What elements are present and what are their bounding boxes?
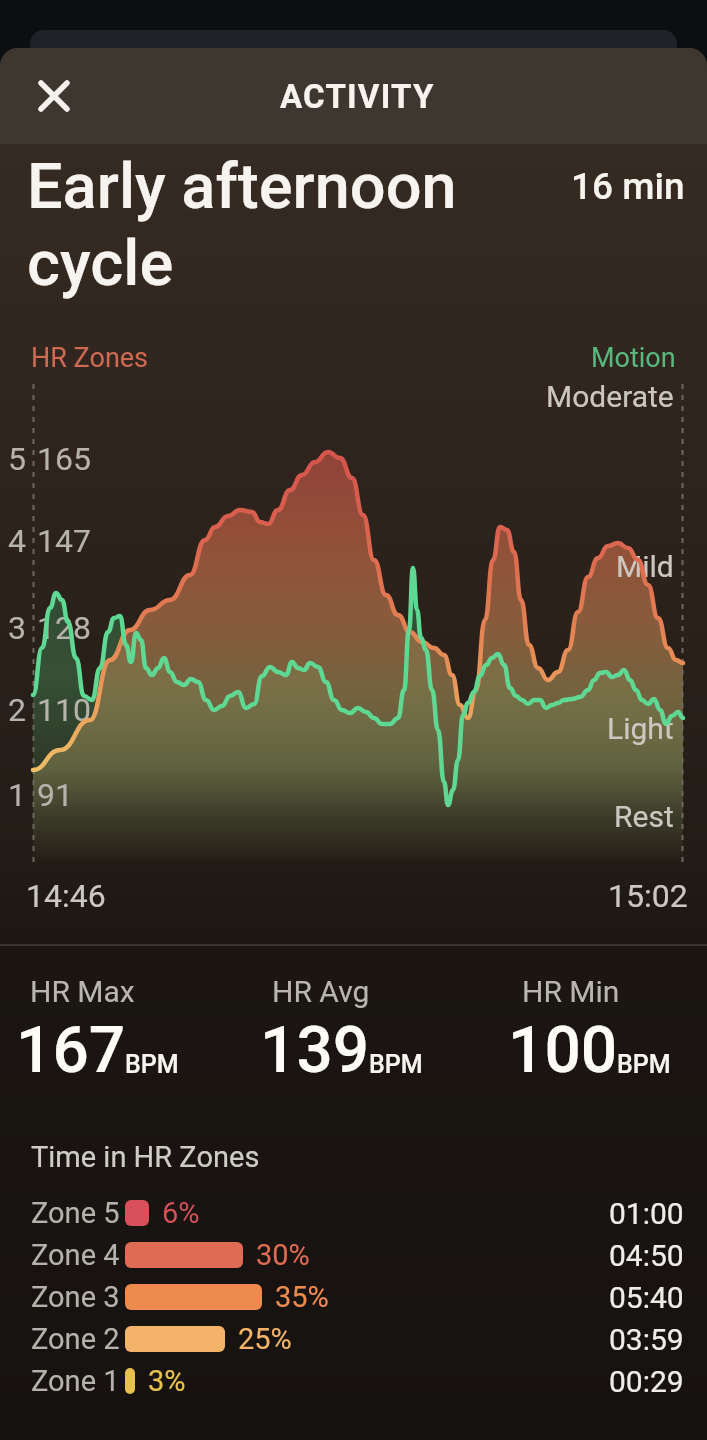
button[interactable]: Zone 3: [0, 1276, 707, 1318]
staticText: 30%: [256, 1238, 310, 1272]
staticText: BPM: [617, 1050, 671, 1079]
staticText: 6%: [162, 1196, 200, 1230]
staticText: HR Zones: [31, 342, 149, 374]
staticText: Zone 3: [31, 1280, 120, 1314]
staticText: Zone 2: [31, 1322, 120, 1356]
staticText: 01:00: [609, 1196, 684, 1231]
staticText: HR Avg: [272, 974, 370, 1009]
staticText: HR Min: [522, 974, 620, 1009]
staticText: 128: [37, 609, 91, 647]
button[interactable]: [34, 76, 74, 116]
staticText: 100: [508, 1013, 618, 1088]
staticText: 147: [37, 522, 91, 560]
staticText: 139: [260, 1013, 370, 1088]
staticText: 2: [8, 691, 26, 729]
staticText: BPM: [369, 1050, 423, 1079]
staticText: Zone 4: [31, 1238, 120, 1272]
button[interactable]: Zone 1: [0, 1360, 707, 1402]
staticText: 00:29: [609, 1364, 684, 1399]
staticText: Moderate: [546, 379, 674, 414]
staticText: 1: [8, 776, 26, 814]
staticText: 91: [37, 776, 73, 814]
staticText: Zone 5: [31, 1196, 120, 1230]
staticText: Motion: [591, 342, 676, 374]
staticText: 03:59: [609, 1322, 684, 1357]
staticText: HR Max: [30, 974, 135, 1009]
button[interactable]: Zone 4: [0, 1234, 707, 1276]
staticText: 4: [8, 522, 26, 560]
staticText: 5: [8, 440, 26, 478]
staticText: 35%: [275, 1280, 329, 1314]
button[interactable]: Zone 5: [0, 1192, 707, 1234]
staticText: 167: [16, 1013, 126, 1088]
staticText: 3: [8, 609, 26, 647]
staticText: Zone 1: [31, 1364, 120, 1398]
staticText: 16 min: [571, 165, 685, 208]
staticText: Mild: [616, 549, 674, 584]
staticText: 165: [37, 440, 91, 478]
staticText: 110: [37, 691, 91, 729]
staticText: 25%: [238, 1322, 292, 1356]
staticText: Rest: [614, 799, 674, 834]
staticText: 05:40: [609, 1280, 684, 1315]
staticText: 14:46: [26, 877, 106, 915]
staticText: Early afternoon cycle: [27, 150, 457, 300]
staticText: 04:50: [609, 1238, 684, 1273]
staticText: 3%: [148, 1364, 186, 1398]
staticText: Time in HR Zones: [31, 1140, 260, 1174]
staticText: 15:02: [608, 877, 688, 915]
button[interactable]: Zone 2: [0, 1318, 707, 1360]
staticText: ACTIVITY: [280, 77, 435, 116]
staticText: Light: [607, 711, 674, 746]
staticText: BPM: [125, 1050, 179, 1079]
